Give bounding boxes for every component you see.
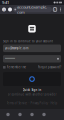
staticText: Terms of Service · Privacy Policy · Help <box>6 101 57 105</box>
button[interactable]: Menu <box>58 5 63 14</box>
button[interactable]: Tabs <box>38 109 50 120</box>
staticText: or continue with another provider <box>7 93 56 96</box>
button[interactable]: Forgot password? <box>38 65 61 69</box>
staticText: Forgot password? <box>38 65 61 69</box>
button[interactable]: Remember me <box>3 65 27 69</box>
button[interactable]: Home <box>2 109 14 120</box>
staticText: account.example.com <box>17 4 47 15</box>
button[interactable]: Tabs <box>52 5 58 14</box>
button[interactable]: Back <box>14 109 26 120</box>
staticText: 2 <box>54 8 56 11</box>
staticText: Quick Sign in <box>22 88 41 92</box>
button[interactable]: account.example.com <box>13 7 52 12</box>
staticText: Sign in to continue to your account <box>3 39 53 43</box>
button[interactable] <box>0 72 64 86</box>
staticText: 9:41 <box>2 0 9 5</box>
staticText: •••••••••• <box>5 57 15 60</box>
button[interactable]: Reload <box>7 5 13 14</box>
button[interactable]: Back <box>1 5 7 14</box>
staticText: Remember me <box>7 65 27 69</box>
staticText: you@example.com <box>5 46 28 50</box>
button[interactable]: Search <box>26 109 38 120</box>
